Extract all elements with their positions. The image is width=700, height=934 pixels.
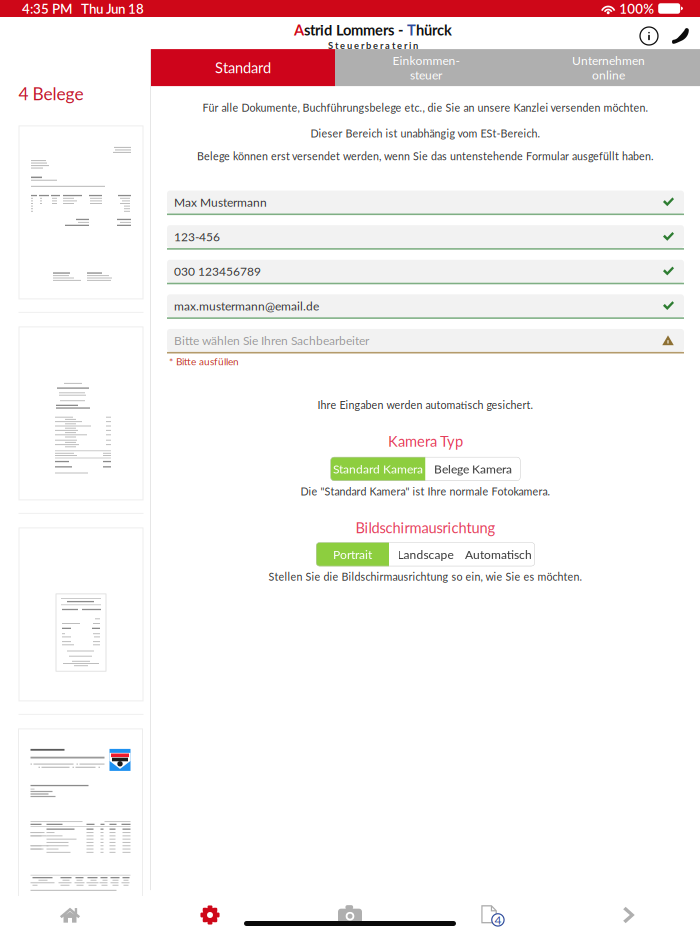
staticText: 100% (619, 0, 654, 16)
staticText: T (407, 21, 416, 39)
staticText: Unternehmen (572, 53, 645, 68)
button[interactable]: Einstellungen (140, 896, 280, 934)
staticText: Landscape (397, 547, 453, 561)
button[interactable]: Max Mustermann (167, 190, 684, 215)
staticText: Standard Kamera (333, 462, 423, 476)
button[interactable]: Automatisch (462, 542, 535, 566)
button[interactable]: 123-456 (167, 225, 684, 250)
staticText: Ihre Eingaben werden automatisch gesiche… (317, 398, 533, 411)
button[interactable]: Kamera (280, 896, 420, 934)
staticText: Bildschirmausrichtung (355, 519, 495, 536)
staticText: 030 123456789 (174, 264, 261, 278)
staticText: Belege können erst versendet werden, wen… (197, 150, 654, 162)
staticText: Portrait (333, 547, 372, 561)
button[interactable]: Bitte wählen Sie Ihren Sachbearbeiter (167, 329, 684, 353)
staticText: Kamera Typ (388, 432, 463, 450)
staticText: Standard (215, 59, 271, 76)
staticText: A (294, 21, 304, 39)
staticText: 4 Belege (18, 83, 83, 104)
staticText: online (592, 68, 625, 82)
staticText: Einkommen- (392, 53, 459, 68)
staticText: Thu Jun 18 (81, 0, 144, 16)
button[interactable]: Belege Kamera (425, 457, 520, 481)
staticText: Stellen Sie die Bildschirmausrichtung so… (268, 570, 582, 583)
staticText: 4 (494, 913, 501, 927)
staticText: Die "Standard Kamera" ist Ihre normale F… (300, 485, 550, 498)
button[interactable]: Einkommen- (335, 49, 517, 86)
button[interactable]: Unternehmen (517, 49, 700, 86)
button[interactable]: Start (0, 896, 140, 934)
staticText: Max Mustermann (174, 195, 267, 209)
staticText: Dieser Bereich ist unabhängig vom ESt-Be… (310, 127, 540, 140)
staticText: steuer (410, 68, 442, 82)
staticText: * Bitte ausfüllen (169, 355, 239, 367)
button[interactable]: Info (636, 23, 662, 49)
button[interactable]: 030 123456789 (167, 260, 684, 284)
button[interactable]: Standard Kamera (330, 457, 425, 481)
staticText: strid Lommers - (304, 21, 407, 39)
staticText: Bitte wählen Sie Ihren Sachbearbeiter (174, 333, 369, 348)
staticText: Automatisch (465, 547, 532, 561)
button[interactable]: Standard (151, 49, 335, 86)
staticText: Für alle Dokumente, Buchführungsbelege e… (202, 101, 648, 114)
button[interactable]: max.mustermann@email.de (167, 294, 684, 319)
button[interactable]: Landscape (389, 542, 462, 566)
staticText: max.mustermann@email.de (174, 299, 319, 313)
button[interactable]: Weiter (560, 896, 700, 934)
button[interactable]: Portrait (316, 542, 389, 566)
button[interactable]: Anrufen (668, 23, 694, 49)
staticText: 4:35 PM (22, 0, 72, 16)
button[interactable]: Belege (420, 896, 560, 934)
staticText: Belege Kamera (434, 462, 512, 476)
staticText: S t e u e r b e r a t e r i n (328, 40, 418, 51)
button[interactable] (18, 528, 143, 715)
button[interactable] (18, 327, 143, 514)
button[interactable] (18, 729, 142, 902)
staticText: 123-456 (174, 229, 220, 244)
button[interactable] (18, 126, 143, 313)
staticText: hürck (416, 21, 452, 39)
